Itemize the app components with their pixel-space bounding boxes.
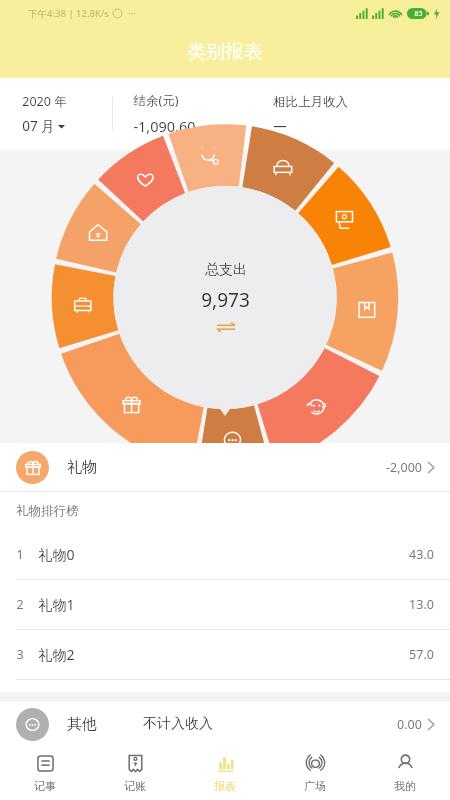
staticText: -1,090.60 <box>133 116 196 136</box>
staticText: ··· <box>128 7 136 20</box>
button[interactable]: 我的 <box>360 746 450 800</box>
staticText: 2 <box>16 596 24 613</box>
staticText: 相比上月收入 <box>273 94 348 110</box>
staticText: 其他 <box>67 715 97 734</box>
button[interactable]: Switch expense income <box>215 322 237 332</box>
staticText: — <box>273 117 287 135</box>
button[interactable]: 广场 <box>270 746 360 800</box>
staticText: 2020 年 <box>22 93 67 110</box>
staticText: 记账 <box>124 779 146 793</box>
button[interactable]: 礼物 <box>0 443 450 491</box>
staticText: 结余(元) <box>133 92 179 109</box>
staticText: 57.0 <box>409 646 434 663</box>
staticText: 我的 <box>394 779 416 793</box>
staticText: 1 <box>16 546 24 563</box>
staticText: 总支出 <box>205 261 247 279</box>
staticText: 礼物0 <box>38 545 75 564</box>
staticText: 85 <box>414 9 423 19</box>
staticText: 礼物1 <box>38 595 75 614</box>
staticText: 13.0 <box>409 596 434 613</box>
button[interactable]: 记事 <box>0 746 90 800</box>
staticText: 07 月 <box>22 117 55 135</box>
button[interactable]: 2 <box>0 580 450 629</box>
button[interactable]: 报表 <box>180 746 270 800</box>
staticText: 礼物2 <box>38 645 75 664</box>
staticText: 不计入收入 <box>143 715 213 733</box>
staticText: 3 <box>16 646 24 663</box>
staticText: 礼物排行榜 <box>16 503 79 519</box>
staticText: 类别报表 <box>187 40 263 64</box>
staticText: 记事 <box>34 779 56 793</box>
button[interactable]: 1 <box>0 530 450 579</box>
button[interactable]: 2020 年 <box>22 93 112 135</box>
staticText: 下午4:38 | 12.8K/s <box>28 7 109 20</box>
button[interactable]: 3 <box>0 630 450 679</box>
staticText: 43.0 <box>409 546 434 563</box>
staticText: 礼物 <box>67 458 97 477</box>
staticText: -2,000 <box>386 459 422 476</box>
button[interactable]: 记账 <box>90 746 180 800</box>
staticText: 报表 <box>214 779 236 793</box>
staticText: 9,973 <box>201 287 250 313</box>
staticText: 广场 <box>304 779 326 793</box>
button[interactable]: 其他 <box>0 702 450 746</box>
staticText: 0.00 <box>397 716 422 733</box>
